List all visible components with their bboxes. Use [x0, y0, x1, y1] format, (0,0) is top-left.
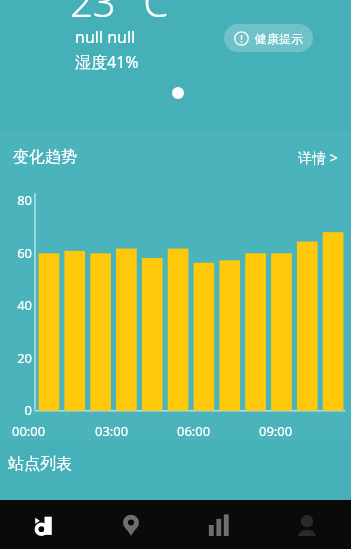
staticText: 23 °C — [70, 0, 169, 28]
button[interactable]: 站点列表 — [0, 441, 351, 486]
staticText: 详情 > — [298, 148, 338, 167]
staticText: 80 — [17, 191, 32, 209]
staticText: 20 — [17, 349, 32, 367]
button[interactable]: 健康提示 — [224, 24, 313, 52]
button[interactable]: Map — [87, 500, 175, 549]
staticText: 06:00 — [177, 422, 259, 440]
button[interactable]: 变化趋势 — [0, 131, 351, 183]
button[interactable]: Profile — [263, 500, 351, 549]
staticText: 60 — [17, 244, 32, 262]
staticText: 09:00 — [259, 422, 341, 440]
staticText: 站点列表 — [8, 454, 72, 474]
button[interactable]: Statistics — [175, 500, 263, 549]
staticText: null null — [75, 26, 136, 48]
button[interactable]: Home — [0, 500, 87, 549]
staticText: 40 — [17, 296, 32, 314]
staticText: 0 — [24, 401, 32, 419]
staticText: 03:00 — [95, 422, 177, 440]
staticText: 变化趋势 — [13, 147, 77, 167]
staticText: 00:00 — [12, 422, 95, 440]
staticText: 湿度41% — [75, 51, 139, 73]
staticText: 健康提示 — [255, 31, 303, 46]
